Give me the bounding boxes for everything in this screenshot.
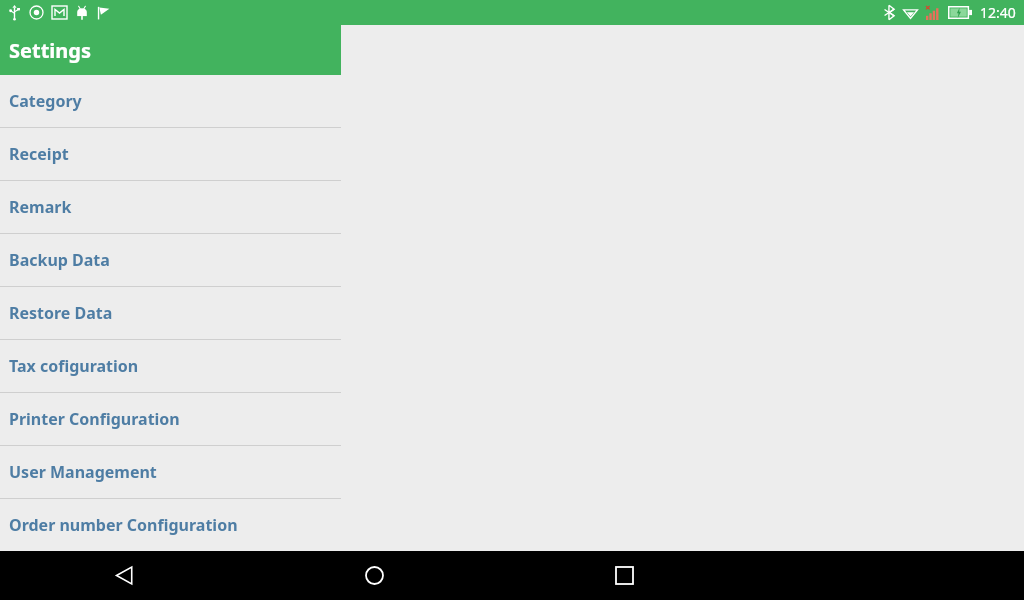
staticText: Tax cofiguration [9, 355, 139, 377]
button[interactable]: Tax cofiguration [0, 340, 341, 392]
staticText: Category [9, 90, 82, 112]
staticText: Remark [9, 196, 72, 218]
button[interactable]: Remark [0, 181, 341, 233]
button[interactable]: Category [0, 75, 341, 127]
staticText: Printer Configuration [9, 408, 180, 430]
staticText: Restore Data [9, 302, 113, 324]
button[interactable]: Restore Data [0, 287, 341, 339]
button[interactable]: Order number Configuration [0, 499, 341, 551]
staticText: 12:40 [980, 3, 1016, 22]
button[interactable]: Printer Configuration [0, 393, 341, 445]
button[interactable]: Receipt [0, 128, 341, 180]
button[interactable]: Back [0, 551, 249, 600]
button[interactable]: Recent apps [499, 551, 749, 600]
button[interactable]: User Management [0, 446, 341, 498]
staticText: Receipt [9, 143, 69, 165]
button[interactable]: Home [249, 551, 499, 600]
staticText: Settings [9, 37, 91, 64]
staticText: Order number Configuration [9, 514, 238, 536]
staticText: User Management [9, 461, 157, 483]
staticText: Backup Data [9, 249, 110, 271]
button[interactable]: Backup Data [0, 234, 341, 286]
